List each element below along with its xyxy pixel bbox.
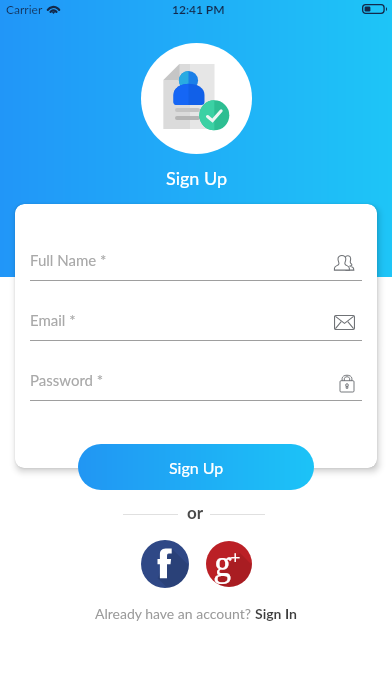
staticText: Sign Up [166, 167, 228, 189]
button[interactable]: Full Name * [30, 244, 362, 304]
other: Name [333, 252, 355, 272]
staticText: g [214, 541, 232, 586]
button[interactable]: Email * [30, 304, 362, 364]
staticText: Already have an account? [95, 605, 255, 622]
staticText: Carrier [6, 2, 43, 16]
button[interactable]: Password * [30, 364, 362, 424]
other: Wi-Fi [47, 4, 60, 14]
button[interactable]: Sign up with Google Plus [206, 541, 252, 587]
other: Email [334, 315, 355, 330]
button[interactable]: Already have an account? [95, 605, 297, 622]
other: Battery [362, 4, 387, 14]
button[interactable]: Sign up with Facebook [141, 540, 189, 588]
staticText: Sign In [255, 605, 297, 622]
staticText: + [230, 545, 241, 571]
staticText: 12:41 PM [172, 2, 225, 16]
staticText: or [187, 502, 204, 522]
staticText: Full Name * [30, 251, 107, 269]
button[interactable]: Sign Up [78, 444, 314, 490]
staticText: Password * [30, 371, 104, 389]
other: Password [339, 373, 355, 393]
staticText: Sign Up [169, 458, 224, 477]
staticText: Email * [30, 311, 76, 329]
